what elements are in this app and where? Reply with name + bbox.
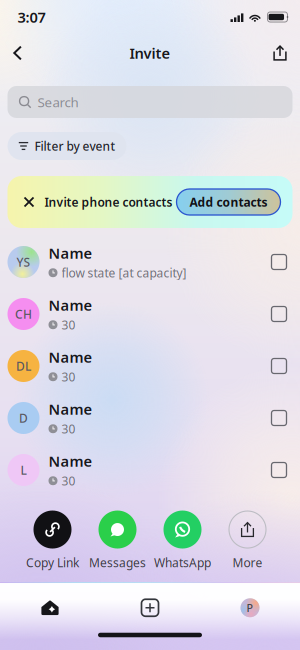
- button[interactable]: Home: [0, 591, 100, 625]
- button[interactable]: More: [215, 510, 280, 570]
- button[interactable]: WhatsApp: [150, 510, 215, 570]
- staticText: Name: [48, 347, 92, 367]
- button[interactable]: L: [0, 444, 300, 496]
- staticText: Name: [48, 295, 92, 315]
- staticText: Name: [48, 399, 92, 419]
- button[interactable]: Filter by event: [7, 132, 126, 160]
- staticText: Messages: [89, 554, 146, 570]
- staticText: Search: [37, 93, 78, 111]
- staticText: 3:07: [17, 7, 45, 27]
- staticText: Filter by event: [34, 138, 115, 154]
- staticText: WhatsApp: [154, 554, 211, 570]
- staticText: More: [232, 554, 262, 570]
- staticText: YS: [16, 254, 30, 270]
- staticText: 30: [61, 421, 75, 437]
- button[interactable]: Share: [261, 38, 288, 67]
- staticText: Name: [48, 243, 92, 263]
- staticText: P: [246, 601, 253, 615]
- staticText: DL: [16, 358, 31, 374]
- staticText: Invite phone contacts: [44, 194, 172, 210]
- button[interactable]: CH: [0, 288, 300, 340]
- staticText: Copy Link: [26, 554, 79, 570]
- button[interactable]: Profile: [200, 591, 300, 625]
- staticText: Add contacts: [189, 194, 267, 210]
- button[interactable]: Copy Link: [20, 510, 85, 570]
- staticText: 30: [61, 473, 75, 489]
- button[interactable]: DL: [0, 340, 300, 392]
- button[interactable]: YS: [0, 236, 300, 288]
- staticText: Name: [48, 451, 92, 471]
- staticText: CH: [15, 306, 32, 322]
- staticText: L: [20, 462, 26, 478]
- button[interactable]: Back: [12, 37, 33, 69]
- button[interactable]: Create: [100, 591, 200, 625]
- staticText: flow state [at capacity]: [61, 265, 186, 281]
- button[interactable]: Add contacts: [176, 189, 280, 215]
- staticText: 30: [61, 369, 75, 385]
- button[interactable]: D: [0, 392, 300, 444]
- staticText: D: [19, 410, 28, 426]
- button[interactable]: Messages: [85, 510, 150, 570]
- staticText: 30: [61, 317, 75, 333]
- button[interactable]: Search: [7, 86, 292, 118]
- staticText: Invite: [129, 43, 170, 63]
- button[interactable]: Dismiss: [13, 188, 44, 215]
